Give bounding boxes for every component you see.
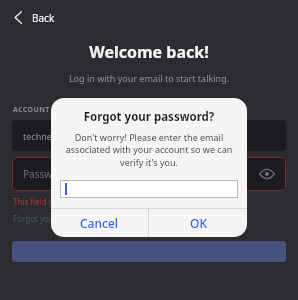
staticText: Log in with your email to start talking. [0, 72, 298, 84]
staticText: Welcome back! [0, 41, 298, 63]
button[interactable]: Show password [256, 163, 278, 185]
staticText: This field is required. [13, 196, 92, 207]
staticText: Password [23, 167, 69, 181]
button[interactable]: technewsexample@mail.com [12, 120, 286, 151]
staticText: technewsexample@mail.com [23, 130, 146, 142]
staticText: Forgot your password? [51, 109, 247, 125]
staticText: Don't worry! Please enter the email asso… [65, 131, 233, 169]
other: Back [12, 10, 25, 25]
button[interactable] [60, 180, 238, 198]
button[interactable]: OK [149, 209, 247, 237]
button[interactable]: Forgot your password? [13, 213, 99, 224]
button[interactable]: Cancel [51, 209, 148, 237]
staticText: Back [32, 11, 55, 25]
staticText: ACCOUNT INFORMATION [13, 105, 108, 115]
staticText: Forgot your password? [13, 213, 99, 224]
button[interactable]: Password [12, 157, 286, 191]
staticText: Cancel [80, 215, 119, 231]
staticText: OK [190, 215, 207, 231]
button[interactable]: Back [10, 8, 57, 27]
